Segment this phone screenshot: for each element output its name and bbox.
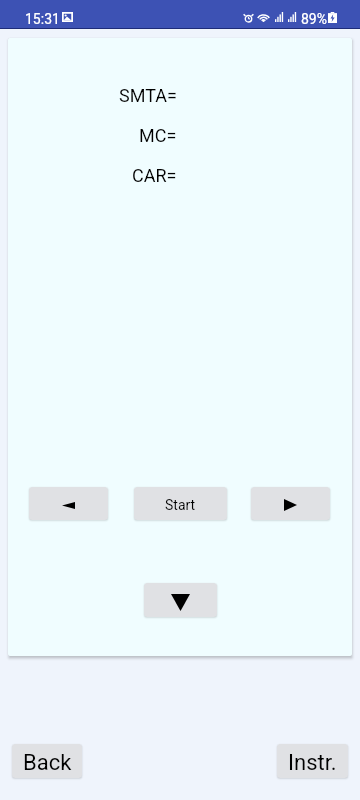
button[interactable]: Next (251, 487, 330, 520)
staticText: CAR= (132, 165, 177, 186)
button[interactable]: Start (134, 487, 227, 520)
button[interactable]: Down (144, 583, 217, 617)
staticText: Start (165, 497, 196, 513)
staticText: 89% (301, 11, 327, 27)
button[interactable]: Instr. (277, 744, 348, 778)
staticText: Back (23, 750, 72, 776)
staticText: Instr. (288, 750, 337, 776)
staticText: MC= (139, 125, 177, 146)
staticText: SMTA= (119, 85, 177, 106)
staticText: 15:31 (25, 11, 60, 27)
button[interactable]: Back (12, 744, 82, 778)
button[interactable]: Previous (29, 487, 108, 520)
